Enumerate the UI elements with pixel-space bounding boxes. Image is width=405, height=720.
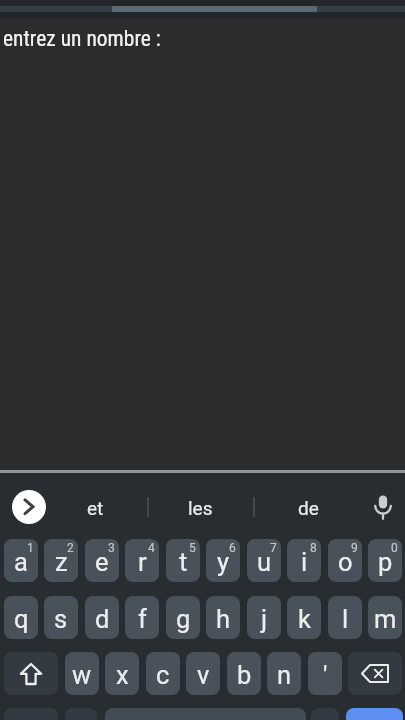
- button[interactable]: [346, 708, 403, 720]
- staticText: x: [116, 660, 129, 690]
- staticText: et: [87, 497, 104, 519]
- staticText: u: [257, 547, 272, 577]
- staticText: h: [216, 604, 231, 634]
- staticText: m: [374, 604, 397, 634]
- staticText: 0: [391, 541, 398, 555]
- staticText: s: [54, 604, 68, 634]
- button[interactable]: [105, 708, 306, 720]
- button[interactable]: i: [287, 539, 321, 582]
- button[interactable]: t: [166, 539, 200, 582]
- button[interactable]: [4, 652, 58, 695]
- staticText: a: [14, 547, 28, 577]
- button[interactable]: u: [247, 539, 281, 582]
- button[interactable]: l: [328, 596, 362, 639]
- button[interactable]: h: [206, 596, 240, 639]
- staticText: g: [176, 604, 191, 634]
- staticText: ': [323, 660, 328, 690]
- button[interactable]: c: [146, 652, 180, 695]
- staticText: 6: [229, 541, 236, 555]
- staticText: d: [95, 604, 110, 634]
- staticText: 9: [351, 541, 358, 555]
- button[interactable]: les: [168, 488, 232, 527]
- staticText: de: [298, 497, 319, 519]
- button[interactable]: y: [206, 539, 240, 582]
- staticText: t: [179, 547, 188, 577]
- staticText: z: [55, 547, 68, 577]
- staticText: v: [197, 660, 210, 690]
- button[interactable]: b: [227, 652, 261, 695]
- button[interactable]: z: [44, 539, 78, 582]
- button[interactable]: g: [166, 596, 200, 639]
- staticText: 7: [270, 541, 277, 555]
- button[interactable]: [367, 491, 399, 523]
- staticText: r: [138, 547, 147, 577]
- staticText: y: [217, 547, 230, 577]
- button[interactable]: j: [247, 596, 281, 639]
- staticText: w: [72, 660, 92, 690]
- staticText: p: [378, 547, 393, 577]
- staticText: o: [338, 547, 353, 577]
- staticText: e: [95, 547, 109, 577]
- button[interactable]: n: [267, 652, 301, 695]
- staticText: j: [261, 604, 268, 634]
- staticText: f: [138, 604, 147, 634]
- staticText: q: [14, 604, 29, 634]
- staticText: 4: [148, 541, 155, 555]
- button[interactable]: e: [85, 539, 119, 582]
- button[interactable]: x: [105, 652, 139, 695]
- button[interactable]: o: [328, 539, 362, 582]
- button[interactable]: [65, 708, 97, 720]
- staticText: c: [156, 660, 170, 690]
- button[interactable]: r: [125, 539, 159, 582]
- button[interactable]: d: [85, 596, 119, 639]
- staticText: 2: [67, 541, 74, 555]
- button[interactable]: m: [368, 596, 402, 639]
- staticText: 5: [189, 541, 196, 555]
- staticText: l: [342, 604, 349, 634]
- staticText: b: [237, 660, 252, 690]
- staticText: 8: [310, 541, 317, 555]
- button[interactable]: w: [65, 652, 99, 695]
- button[interactable]: de: [276, 488, 340, 527]
- button[interactable]: et: [63, 488, 127, 527]
- staticText: i: [301, 547, 308, 577]
- staticText: k: [298, 604, 311, 634]
- button[interactable]: k: [287, 596, 321, 639]
- button[interactable]: p: [368, 539, 402, 582]
- button[interactable]: ': [308, 652, 342, 695]
- button[interactable]: [12, 490, 46, 524]
- button[interactable]: [348, 652, 402, 695]
- staticText: n: [277, 660, 292, 690]
- button[interactable]: a: [4, 539, 38, 582]
- staticText: entrez un nombre :: [3, 26, 161, 51]
- staticText: les: [188, 497, 213, 519]
- button[interactable]: f: [125, 596, 159, 639]
- button[interactable]: v: [186, 652, 220, 695]
- button[interactable]: q: [4, 596, 38, 639]
- button[interactable]: [4, 708, 58, 720]
- staticText: 1: [27, 541, 34, 555]
- staticText: 3: [108, 541, 115, 555]
- button[interactable]: s: [44, 596, 78, 639]
- button[interactable]: [311, 708, 339, 720]
